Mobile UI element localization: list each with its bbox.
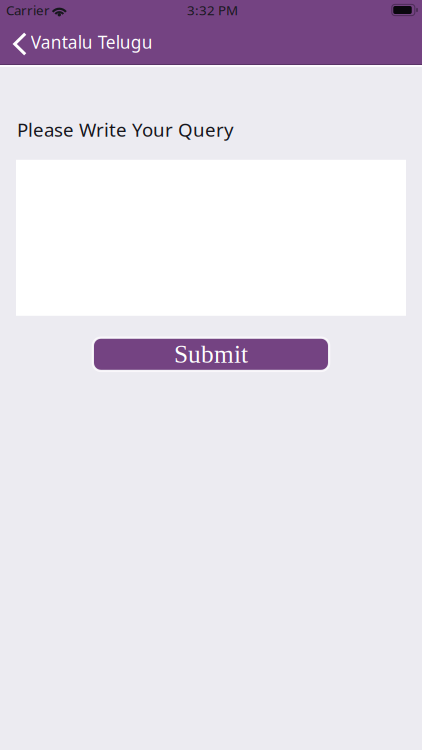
- staticText: Vantalu Telugu: [31, 30, 153, 53]
- staticText: Please Write Your Query: [17, 117, 234, 142]
- staticText: 3:32 PM: [187, 1, 238, 19]
- button[interactable]: Vantalu Telugu: [0, 20, 167, 64]
- button[interactable]: Submit: [94, 339, 328, 370]
- staticText: Carrier: [6, 1, 50, 19]
- staticText: Submit: [174, 340, 248, 368]
